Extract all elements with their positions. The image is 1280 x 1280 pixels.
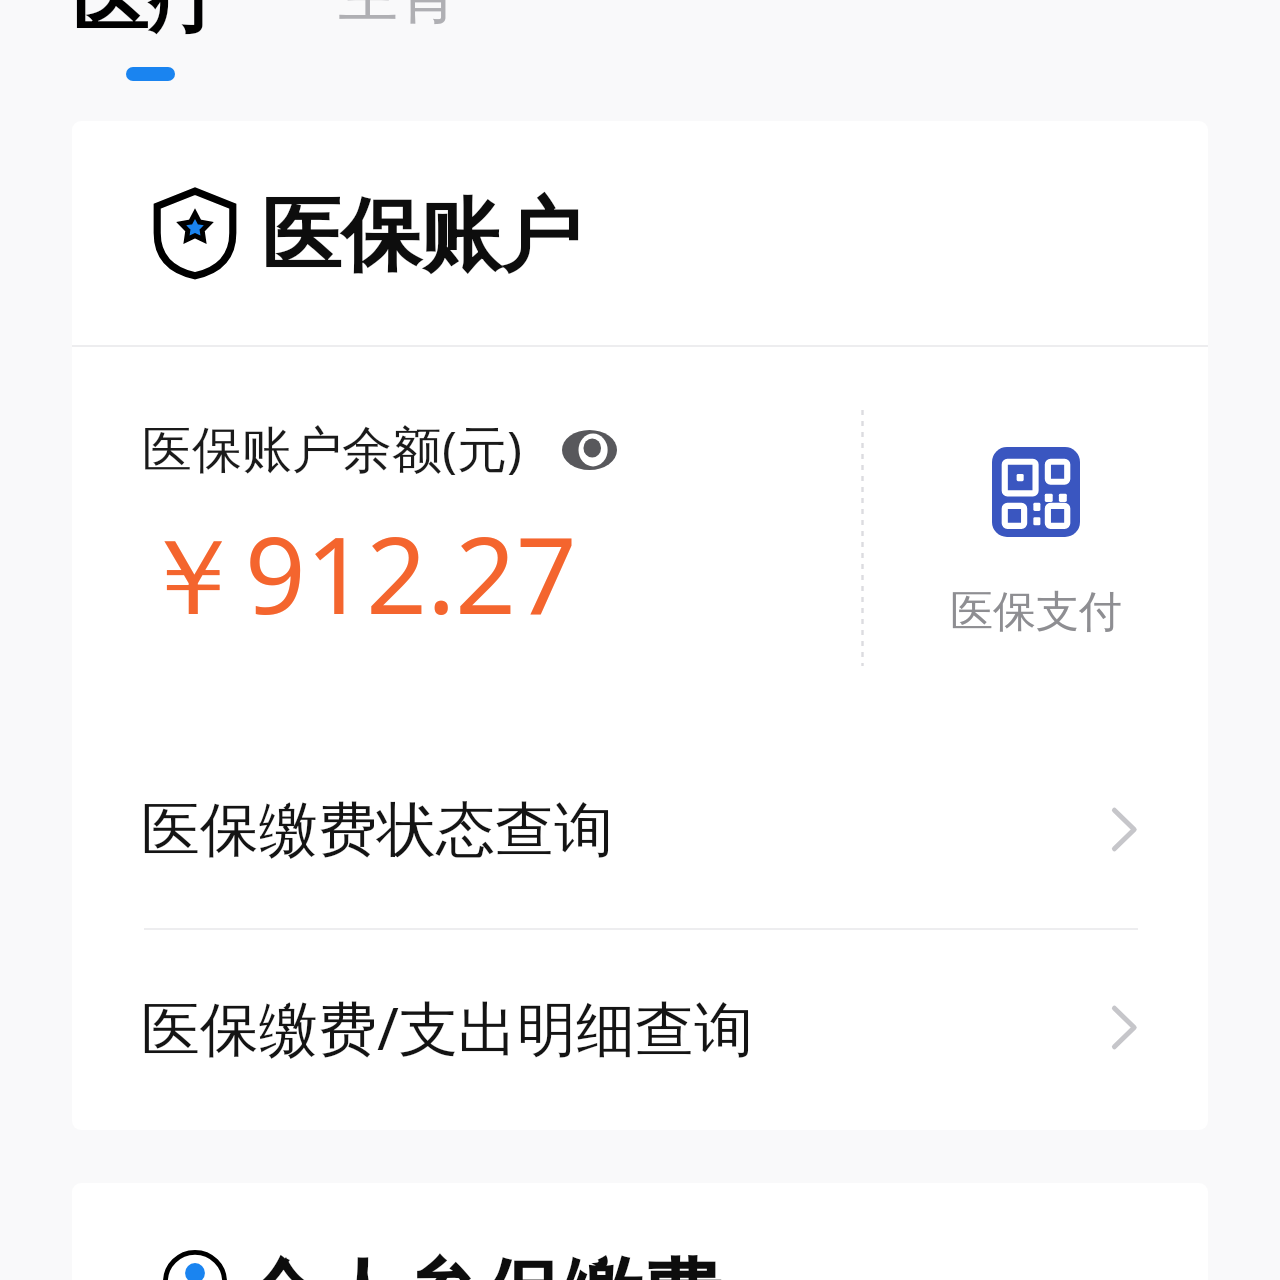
button[interactable]: 医保账户 [153, 186, 581, 287]
button[interactable]: 医保缴费状态查询 [72, 757, 1208, 902]
staticText: 医保缴费/支出明细查询 [141, 987, 753, 1068]
button[interactable]: 个人参保缴费 [163, 1247, 722, 1280]
staticText: 医保缴费状态查询 [141, 793, 613, 867]
button[interactable]: 生育 [336, 0, 460, 33]
staticText: 医保账户 [261, 186, 581, 287]
staticText: 医保账户余额(元) [142, 414, 522, 482]
staticText: 医保支付 [950, 585, 1122, 639]
staticText: ￥912.27 [139, 501, 577, 646]
button[interactable]: 医疗 [72, 0, 224, 47]
button[interactable]: 医保支付 [950, 447, 1122, 639]
button[interactable]: 医保缴费/支出明细查询 [72, 955, 1208, 1100]
button[interactable]: Toggle balance visibility [562, 430, 617, 470]
staticText: 个人参保缴费 [242, 1247, 722, 1280]
